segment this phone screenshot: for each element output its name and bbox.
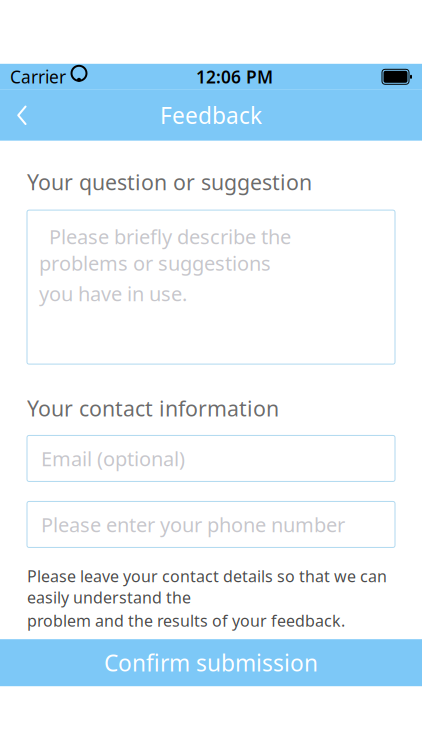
staticText: you have in use. [39, 280, 187, 307]
staticText: Feedback [160, 100, 262, 130]
button[interactable]: Please enter your phone number [27, 501, 395, 547]
staticText: Please leave your contact details so tha… [27, 565, 387, 608]
staticText: Confirm submission [104, 648, 318, 678]
button[interactable]: Email (optional) [27, 435, 395, 481]
staticText: Carrier [10, 65, 66, 88]
button[interactable]: Confirm submission [0, 639, 422, 686]
staticText: Please enter your phone number [41, 511, 345, 538]
button[interactable]: Please briefly describe the problems or … [27, 210, 395, 364]
staticText: 12:06 PM [196, 65, 273, 88]
button[interactable]: Back [0, 93, 44, 137]
staticText: problem and the results of your feedback… [27, 610, 345, 631]
staticText: Please briefly describe the problems or … [39, 223, 291, 276]
staticText: Email (optional) [41, 445, 185, 472]
staticText: Your contact information [27, 394, 279, 422]
staticText: Your question or suggestion [27, 168, 312, 196]
